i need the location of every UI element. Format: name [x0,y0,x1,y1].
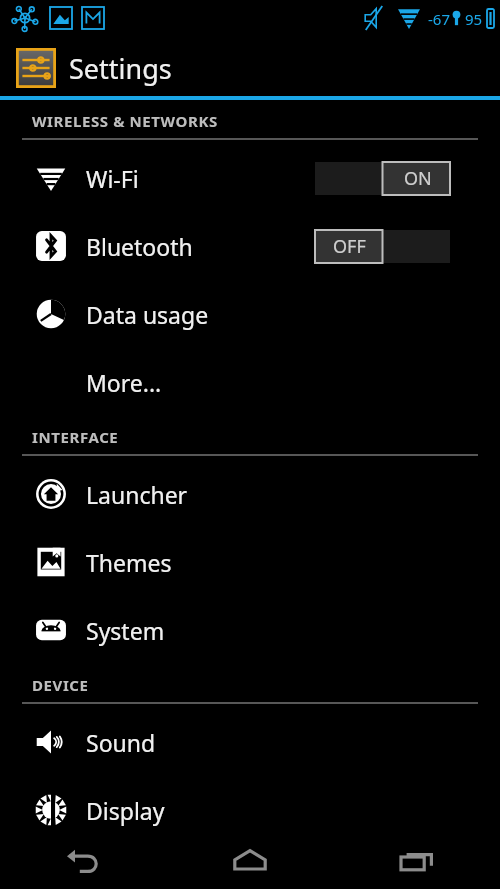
staticText: DEVICE [32,675,89,695]
staticText: More... [86,367,162,398]
staticText: -67 [428,9,450,29]
staticText: Bluetooth [86,231,193,262]
staticText: Settings [69,50,172,87]
button[interactable]: Bluetooth [0,212,500,280]
button[interactable]: Back [0,832,166,889]
staticText: Launcher [86,479,188,510]
staticText: Data usage [86,299,209,330]
button[interactable]: Settings [0,40,500,96]
button[interactable]: Home [166,832,333,889]
staticText: 95 [465,9,483,29]
button[interactable]: ON [315,162,450,195]
staticText: System [86,615,165,646]
button[interactable]: OFF [315,230,450,263]
staticText: ON [404,166,432,191]
staticText: Sound [86,727,156,758]
button[interactable]: Sound [0,708,500,776]
button[interactable]: System [0,596,500,664]
staticText: INTERFACE [32,427,119,447]
button[interactable]: Data usage [0,280,500,348]
staticText: Display [86,795,165,826]
button[interactable]: More... [0,348,500,416]
button[interactable]: Recents [333,832,500,889]
staticText: WIRELESS & NETWORKS [32,111,218,131]
button[interactable]: Display [0,776,500,844]
staticText: Themes [86,547,172,578]
staticText: OFF [333,234,366,259]
button[interactable]: Themes [0,528,500,596]
staticText: Wi-Fi [86,163,139,194]
button[interactable]: Launcher [0,460,500,528]
button[interactable]: Wi-Fi [0,144,500,212]
